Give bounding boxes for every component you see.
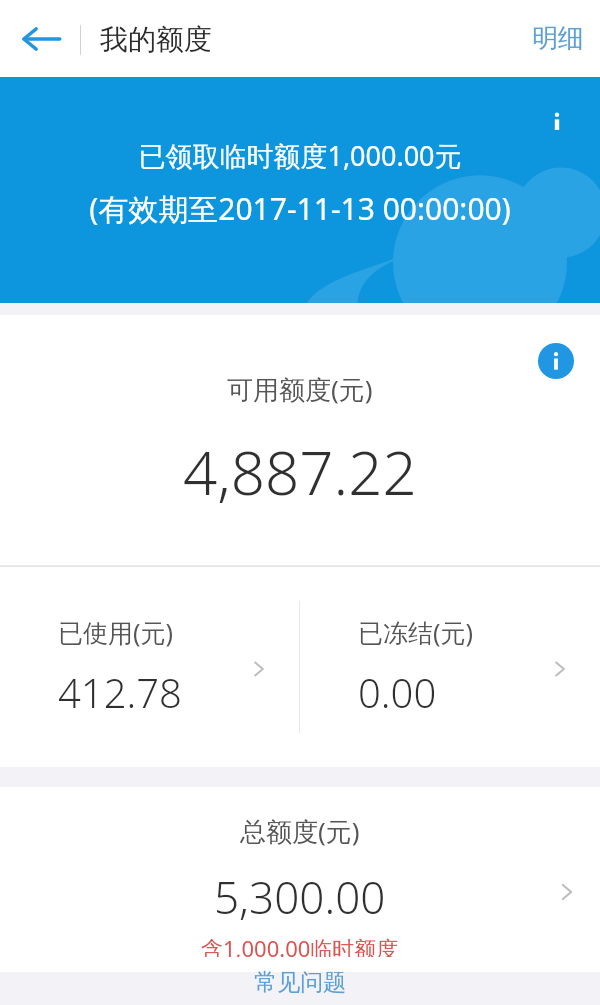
staticText: 5,300.00 [214,867,386,927]
button[interactable]: 常见问题 [236,964,364,1001]
button[interactable]: 可用额度说明 [0,315,600,565]
staticText: 4,887.22 [183,431,417,513]
button[interactable]: 明细 [516,0,600,77]
button[interactable]: 已使用(元) [0,567,299,767]
staticText: 含1,000.00临时额度 [201,933,399,957]
button[interactable]: 可用额度说明 [536,341,576,381]
staticText: 已领取临时额度1,000.00元 [138,137,462,174]
staticText: 可用额度(元) [227,371,373,407]
staticText: 我的额度 [100,22,212,57]
staticText: 常见问题 [254,968,346,997]
staticText: 412.78 [58,665,182,719]
staticText: 明细 [532,22,584,55]
button[interactable]: 临时额度说明 [540,105,574,139]
staticText: (有效期至2017-11-13 00:00:00) [89,188,511,229]
button[interactable]: 返回 [6,4,76,74]
staticText: 已使用(元) [58,615,174,649]
button[interactable]: 已冻结(元) [300,567,600,767]
staticText: 0.00 [358,665,437,719]
staticText: 已冻结(元) [358,615,474,649]
staticText: 总额度(元) [240,813,360,849]
button[interactable]: 总额度(元) [0,787,600,957]
